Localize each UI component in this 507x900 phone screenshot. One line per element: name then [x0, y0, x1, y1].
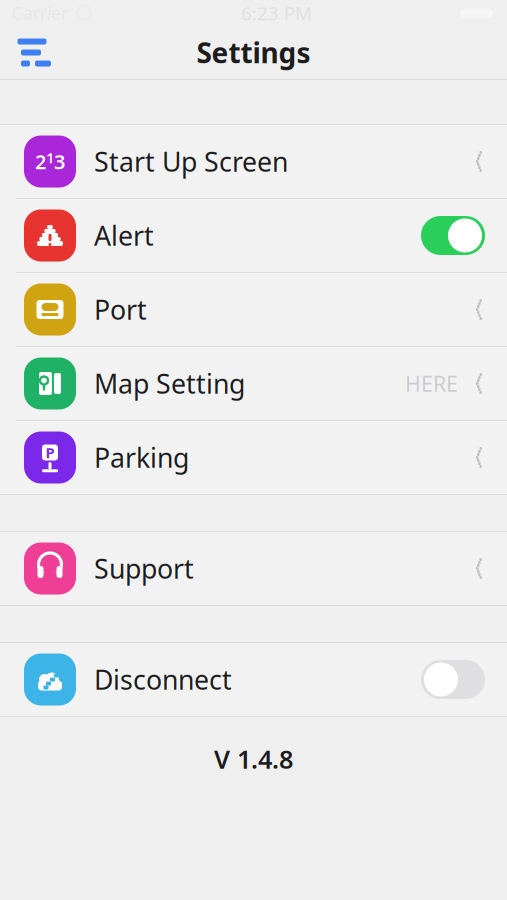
button[interactable]: Alert [0, 199, 507, 273]
button[interactable]: P [0, 421, 507, 494]
staticText: Map Setting [94, 366, 245, 401]
staticText: 2 [35, 148, 46, 175]
staticText: Start Up Screen [94, 144, 288, 179]
staticText: Alert [94, 218, 154, 253]
staticText: P [45, 443, 54, 462]
staticText: 6:23 PM [241, 1, 312, 25]
staticText: V 1.4.8 [214, 742, 293, 776]
staticText: Parking [94, 440, 189, 475]
staticText: Support [94, 551, 194, 586]
staticText: 1 [46, 148, 54, 167]
staticText: Port [94, 292, 147, 327]
button[interactable]: Port [0, 273, 507, 347]
staticText: HERE [405, 369, 458, 398]
button[interactable]: 2 [0, 125, 507, 199]
staticText: Settings [196, 34, 310, 71]
button[interactable]: Map Setting [0, 347, 507, 421]
button[interactable]: Disconnect [0, 643, 507, 716]
staticText: 3 [54, 148, 65, 175]
staticText: Disconnect [94, 662, 232, 697]
button[interactable]: Support [0, 532, 507, 605]
button[interactable]: Menu [8, 25, 64, 79]
